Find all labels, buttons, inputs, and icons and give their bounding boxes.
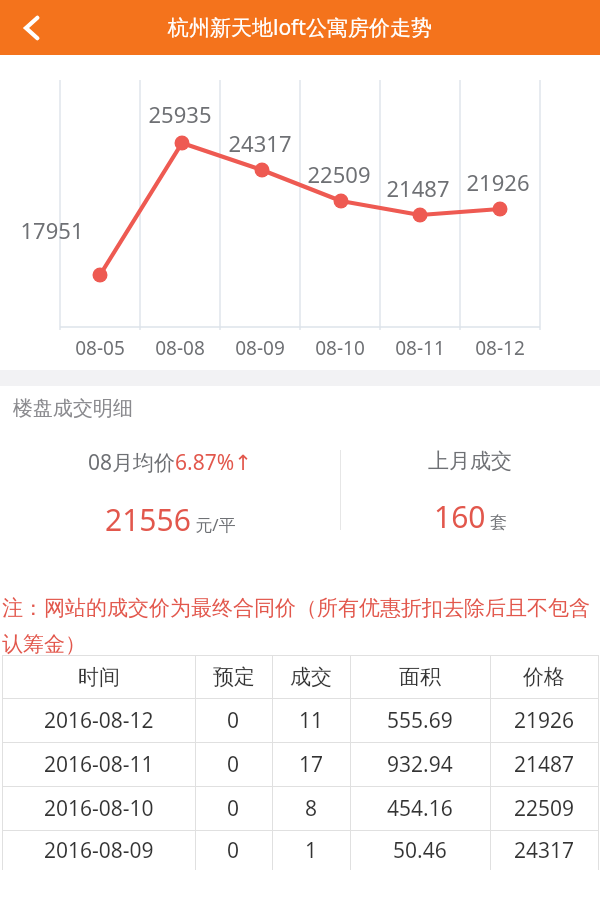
button[interactable]: 2016-08-12: [2, 699, 598, 742]
staticText: 17951: [18, 215, 86, 245]
staticText: 08-11: [380, 335, 460, 361]
staticText: 11: [299, 706, 324, 735]
staticText: 08-12: [460, 335, 540, 361]
staticText: 0: [227, 750, 240, 779]
staticText: 成交: [290, 664, 332, 690]
button[interactable]: Back: [6, 2, 58, 54]
staticText: 08-08: [140, 335, 220, 361]
staticText: 时间: [78, 664, 120, 690]
staticText: 08-05: [60, 335, 140, 361]
button[interactable]: 上月成交: [340, 448, 600, 537]
staticText: 24317: [226, 128, 294, 158]
staticText: 21556 元/平: [105, 499, 236, 540]
staticText: 932.94: [387, 750, 453, 779]
staticText: 555.69: [387, 706, 453, 735]
staticText: 预定: [213, 664, 255, 690]
button[interactable]: 2016-08-09: [2, 831, 598, 870]
staticText: 21926: [514, 706, 575, 735]
staticText: 21926: [464, 167, 532, 197]
staticText: 0: [227, 794, 240, 823]
staticText: 0: [227, 836, 240, 865]
staticText: 1: [305, 836, 318, 865]
button[interactable]: 2016-08-10: [2, 787, 598, 830]
staticText: 24317: [514, 836, 575, 865]
staticText: 454.16: [387, 794, 453, 823]
staticText: 注：网站的成交价为最终合同价（所有优惠折扣去除后且不包含认筹金）: [2, 595, 598, 657]
staticText: 22509: [514, 794, 575, 823]
staticText: 价格: [523, 664, 565, 690]
staticText: 17: [299, 750, 324, 779]
staticText: 2016-08-11: [44, 750, 154, 779]
staticText: 8: [305, 794, 318, 823]
staticText: 08-09: [220, 335, 300, 361]
button[interactable]: 2016-08-11: [2, 743, 598, 786]
staticText: 2016-08-09: [44, 836, 154, 865]
staticText: 21487: [384, 173, 452, 203]
staticText: 0: [227, 706, 240, 735]
staticText: 2016-08-10: [44, 794, 154, 823]
staticText: 2016-08-12: [44, 706, 154, 735]
staticText: 杭州新天地loft公寓房价走势: [168, 13, 432, 42]
staticText: 面积: [399, 664, 441, 690]
staticText: 21487: [514, 750, 575, 779]
staticText: 08-10: [300, 335, 380, 361]
staticText: 22509: [305, 159, 373, 189]
staticText: 08月均价6.87%↑: [88, 448, 252, 477]
button[interactable]: 08月均价6.87%↑: [0, 448, 340, 540]
staticText: 160 套: [434, 496, 507, 537]
staticText: 25935: [146, 99, 214, 129]
button[interactable]: 时间: [2, 656, 598, 698]
staticText: 50.46: [393, 836, 447, 865]
staticText: 楼盘成交明细: [13, 396, 133, 421]
staticText: 上月成交: [428, 448, 512, 474]
